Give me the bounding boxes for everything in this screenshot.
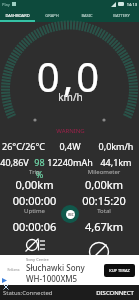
button[interactable]: Record [61,205,79,223]
staticText: 00:00:06 [0,219,69,234]
staticText: 26°C/26°C [0,140,47,152]
button[interactable]: BATTERY [104,8,139,22]
staticText: 14:13 [126,2,137,7]
staticText: BASIC [81,13,93,18]
staticText: KUP TERAZ [109,268,130,273]
button[interactable]: DISCONNECT [94,287,136,299]
staticText: DISCONNECT [96,289,134,297]
button[interactable]: Cruise control off [89,239,112,255]
staticText: BATTERY [113,13,130,18]
staticText: 98% [32,156,47,180]
button[interactable]: DASHBOARD [0,8,34,22]
staticText: WARNING [1,127,139,135]
staticText: 40,86V [0,156,29,168]
staticText: 00:15:20 [69,193,139,208]
staticText: DASHBOARD [5,13,30,18]
staticText: 44,1km [93,156,139,168]
staticText: Total [69,207,139,215]
staticText: 4,67km [69,219,139,234]
button[interactable]: GRAPH [34,8,69,22]
staticText: GRAPH [45,13,59,18]
button[interactable]: BASIC [69,8,104,22]
staticText: 12240mAh [47,156,93,168]
staticText: WH-1000XM5 [26,273,78,284]
staticText: Słuchawki Sony [26,262,85,273]
staticText: Sony Centre [26,257,49,262]
staticText: 0,00km [0,177,69,192]
staticText: Reklama [7,268,20,272]
staticText: 0,4W [47,140,93,152]
staticText: Play [2,2,10,7]
staticText: 0,0 [0,49,139,103]
staticText: km/h [1,90,139,104]
staticText: 0,00km [69,177,139,192]
staticText: Uptime [0,207,69,215]
button[interactable]: Close ad [2,283,10,291]
staticText: 0,0km/h [93,140,139,152]
staticText: Trip [0,168,69,176]
staticText: REC [68,213,74,217]
staticText: Status:Connected [3,289,53,297]
button[interactable]: Headlight off [24,237,48,253]
button[interactable]: KUP TERAZ [104,264,135,277]
staticText: Mileometer [69,168,139,176]
staticText: 00:00:00 [0,193,69,208]
